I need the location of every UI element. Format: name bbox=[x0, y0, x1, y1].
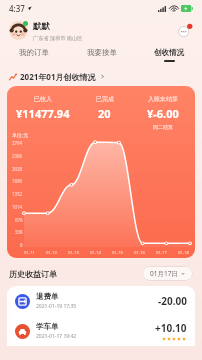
staticText: 0 bbox=[20, 242, 23, 248]
staticText: 2021年01月创收情况 bbox=[20, 71, 96, 82]
staticText: 01-11 bbox=[24, 250, 35, 256]
staticText: 2366 bbox=[12, 153, 23, 159]
button[interactable]: Messages bbox=[177, 23, 193, 39]
staticText: 广东省 深圳市 南山区 bbox=[33, 34, 83, 41]
staticText: 676 bbox=[15, 217, 23, 223]
staticText: 01-18 bbox=[178, 250, 189, 256]
staticText: 创收情况 bbox=[154, 48, 184, 57]
staticText: 01-15 bbox=[112, 250, 123, 256]
staticText: ¥11477.94 bbox=[16, 106, 70, 121]
staticText: 周二结算 bbox=[153, 124, 173, 130]
staticText: 单位:元 bbox=[12, 132, 29, 139]
staticText: 01-12 bbox=[46, 250, 57, 256]
staticText: 退费单 bbox=[36, 292, 59, 301]
button[interactable]: 退费单 bbox=[7, 286, 195, 316]
staticText: 1690 bbox=[12, 178, 23, 184]
staticText: 01-13 bbox=[68, 250, 79, 256]
staticText: 01月17日 bbox=[150, 269, 178, 278]
staticText: 2021-01-17 19:42 bbox=[36, 333, 77, 340]
staticText: ¥-6.00 bbox=[147, 106, 179, 121]
staticText: 我要接单 bbox=[87, 48, 117, 57]
staticText: 2028 bbox=[12, 166, 23, 172]
staticText: 已完成 bbox=[96, 95, 114, 103]
staticText: +10.10 bbox=[155, 321, 187, 335]
staticText: 已收入 bbox=[34, 95, 52, 103]
staticText: 入账未结算 bbox=[148, 95, 178, 103]
staticText: 1352 bbox=[12, 191, 23, 197]
staticText: 历史收益订单 bbox=[9, 269, 57, 279]
staticText: 1014 bbox=[12, 204, 23, 210]
button[interactable]: 我要接单 bbox=[68, 44, 135, 66]
staticText: -20.00 bbox=[158, 294, 187, 308]
staticText: 我的订单 bbox=[19, 48, 49, 57]
button[interactable]: 学车单 bbox=[7, 316, 195, 346]
staticText: 338 bbox=[15, 229, 23, 235]
button[interactable]: 2021年01月创收情况 bbox=[9, 71, 193, 82]
button[interactable]: 我的订单 bbox=[0, 44, 68, 66]
staticText: 01-17 bbox=[156, 250, 167, 256]
staticText: 2021-01-19 17:35 bbox=[36, 303, 77, 310]
button[interactable]: 01月17日 bbox=[142, 266, 193, 281]
button[interactable]: 已收入 bbox=[7, 86, 195, 258]
staticText: 2704 bbox=[12, 140, 23, 146]
staticText: 01-14 bbox=[90, 250, 101, 256]
staticText: 学车单 bbox=[36, 322, 59, 331]
button[interactable]: Profile avatar bbox=[9, 21, 28, 40]
staticText: 01-16 bbox=[134, 250, 145, 256]
button[interactable]: 创收情况 bbox=[135, 44, 202, 66]
staticText: 4:37 bbox=[9, 3, 25, 14]
staticText: 默默 bbox=[33, 21, 50, 32]
staticText: 20 bbox=[98, 106, 111, 121]
